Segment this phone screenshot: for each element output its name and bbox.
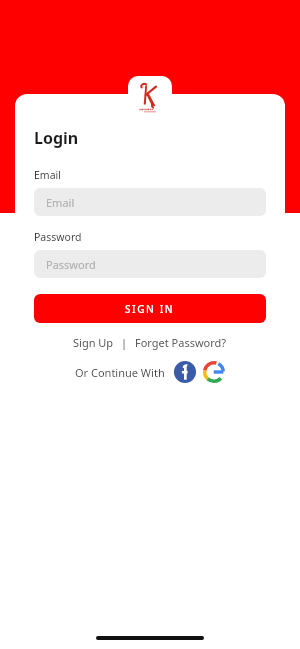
staticText: | [121,335,128,350]
staticText: Login [34,127,79,149]
staticText: Or Continue With [75,365,165,380]
staticText: SIGN IN [125,302,175,316]
staticText: Password [34,230,82,244]
staticText: Password [46,257,96,272]
staticText: Forget Password? [135,335,227,350]
button[interactable]: Forget Password? [133,333,229,352]
button[interactable]: Email [34,188,266,216]
button[interactable]: Sign Up [71,333,116,352]
staticText: Email [34,168,61,182]
button[interactable]: Continue with Facebook [173,360,197,384]
button[interactable]: Password [34,250,266,278]
button[interactable]: Continue with Google [202,360,226,384]
staticText: Email [46,195,75,210]
button[interactable]: App logo [128,76,172,120]
staticText: Sign Up [73,335,114,350]
button[interactable]: SIGN IN [34,294,266,323]
